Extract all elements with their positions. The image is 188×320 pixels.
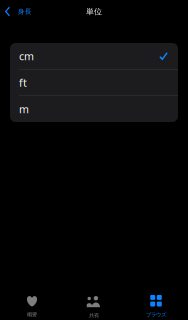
button[interactable]: 概要 bbox=[1, 293, 63, 319]
button[interactable]: cm bbox=[10, 43, 178, 69]
staticText: m bbox=[19, 102, 29, 116]
staticText: ブラウズ bbox=[146, 311, 166, 318]
staticText: 概要 bbox=[27, 311, 37, 318]
button[interactable]: ブラウズ bbox=[125, 293, 187, 319]
staticText: 共有 bbox=[89, 312, 99, 319]
button[interactable]: 共有 bbox=[63, 293, 125, 319]
staticText: 身長 bbox=[18, 7, 32, 16]
staticText: cm bbox=[19, 49, 34, 63]
button[interactable]: 身長 bbox=[0, 0, 36, 22]
staticText: ft bbox=[19, 75, 27, 90]
button[interactable]: ft bbox=[10, 69, 178, 95]
staticText: 単位 bbox=[86, 7, 102, 16]
button[interactable]: m bbox=[10, 96, 178, 122]
